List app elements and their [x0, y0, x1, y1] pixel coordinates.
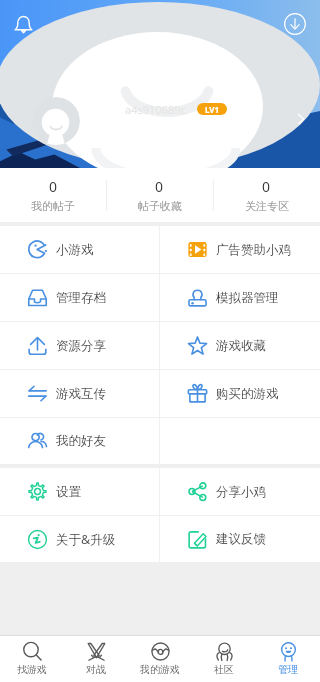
button[interactable]: 模拟器管理	[160, 274, 320, 321]
button[interactable]: 找游戏	[0, 636, 64, 682]
staticText: 小游戏	[56, 242, 94, 258]
staticText: 找游戏	[17, 663, 47, 676]
staticText: 资源分享	[56, 338, 106, 354]
button[interactable]: 资源分享	[0, 322, 159, 369]
staticText: LV1	[205, 104, 220, 115]
staticText: a4s910689c	[125, 102, 186, 117]
button[interactable]: 设置	[0, 468, 159, 515]
button[interactable]: 建议反馈	[160, 516, 320, 562]
button[interactable]: 购买的游戏	[160, 370, 320, 417]
button[interactable]: Notifications	[9, 10, 37, 38]
button[interactable]: 游戏收藏	[160, 322, 320, 369]
staticText: 管理存档	[56, 290, 106, 306]
staticText: 0	[155, 177, 164, 196]
button[interactable]: 分享小鸡	[160, 468, 320, 515]
button[interactable]: 0	[213, 168, 320, 222]
staticText: 管理	[278, 663, 298, 676]
button[interactable]: 广告赞助小鸡	[160, 226, 320, 273]
staticText: 我的帖子	[31, 199, 75, 213]
button[interactable]: 0	[0, 168, 106, 222]
button[interactable]: LV1	[197, 103, 227, 115]
staticText: 购买的游戏	[216, 386, 279, 402]
button[interactable]: 关于&升级	[0, 516, 159, 562]
staticText: 社区	[214, 663, 234, 676]
staticText: 游戏收藏	[216, 338, 266, 354]
button[interactable]: 管理存档	[0, 274, 159, 321]
staticText: 游戏互传	[56, 386, 106, 402]
button[interactable]: Downloads	[281, 10, 309, 38]
staticText: 0	[49, 177, 58, 196]
button[interactable]: 对战	[64, 636, 128, 682]
staticText: 设置	[56, 484, 81, 500]
staticText: 分享小鸡	[216, 484, 266, 500]
button[interactable]: 管理	[256, 636, 320, 682]
staticText: 我的游戏	[140, 663, 180, 676]
button[interactable]: 我的好友	[0, 418, 159, 464]
button[interactable]: 我的游戏	[128, 636, 192, 682]
button[interactable]: 0	[106, 168, 213, 222]
staticText: 0	[262, 177, 271, 196]
button[interactable]: Profile	[292, 110, 310, 128]
staticText: 对战	[86, 663, 106, 676]
staticText: 模拟器管理	[216, 290, 279, 306]
staticText: 我的好友	[56, 433, 106, 449]
staticText: 关注专区	[245, 199, 289, 213]
button[interactable]: 社区	[192, 636, 256, 682]
staticText: 建议反馈	[216, 531, 266, 547]
staticText: 广告赞助小鸡	[216, 242, 291, 258]
button[interactable]: 游戏互传	[0, 370, 159, 417]
staticText: 帖子收藏	[138, 199, 182, 213]
staticText: 关于&升级	[56, 531, 116, 548]
button[interactable]: 小游戏	[0, 226, 159, 273]
button[interactable]: Avatar	[32, 97, 80, 145]
